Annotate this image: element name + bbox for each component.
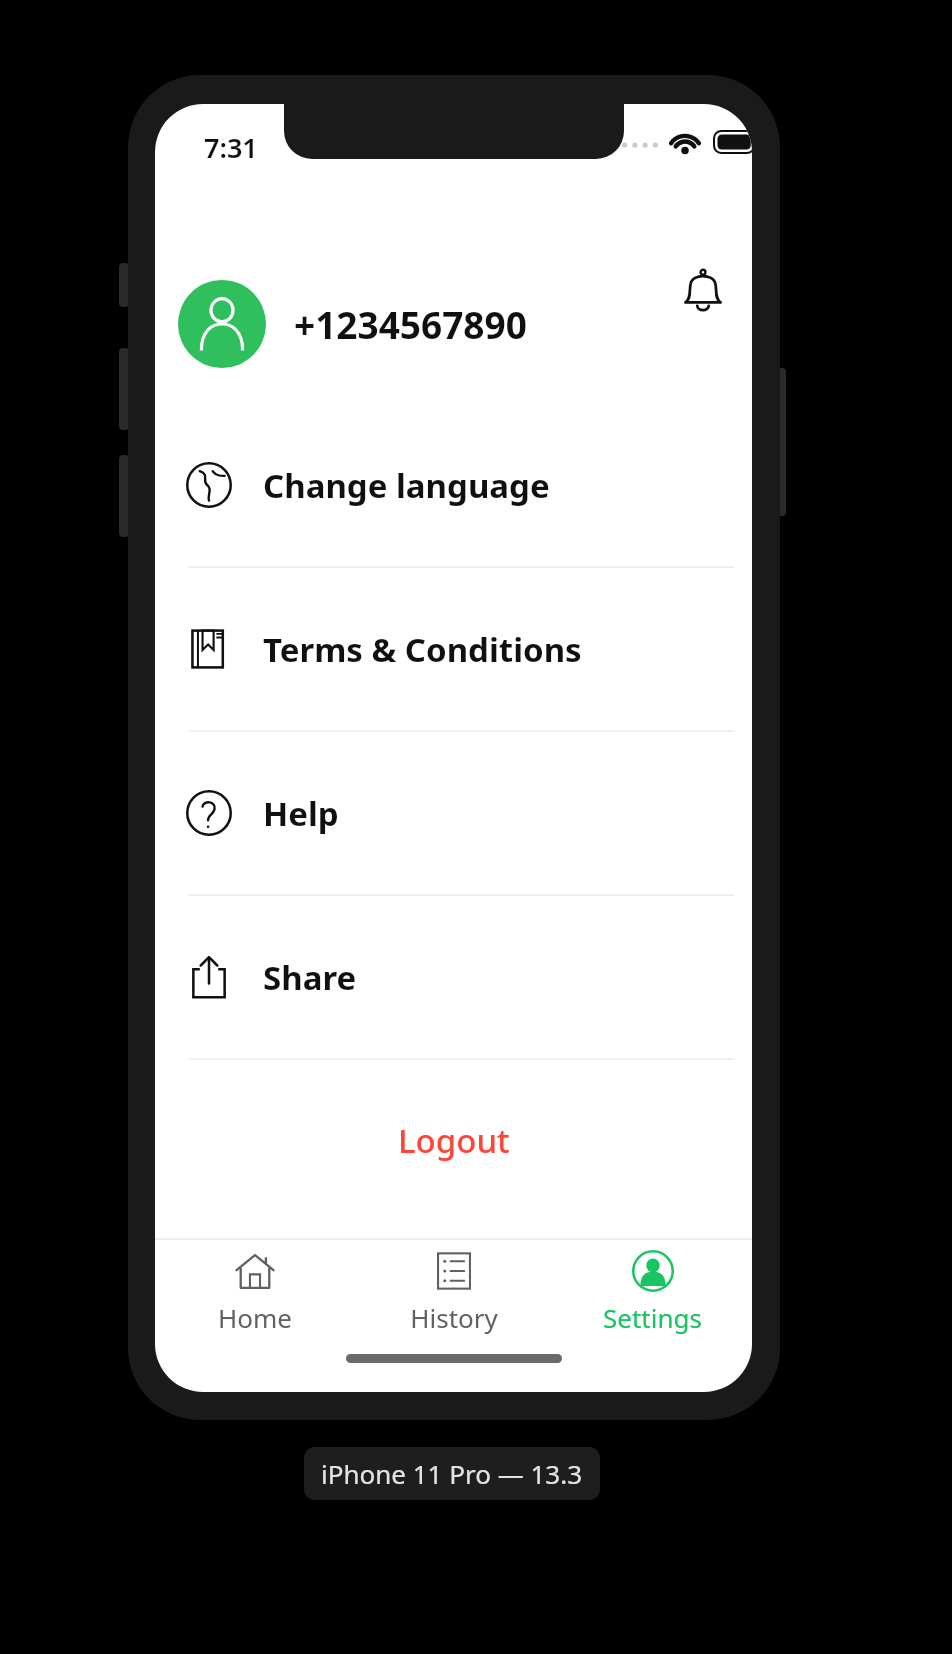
staticText: 7:31 [204,129,258,166]
staticText: Change language [263,463,550,508]
staticText: iPhone 11 Pro — 13.3 [321,1456,583,1491]
button[interactable]: Logout [155,1060,752,1220]
staticText: Home [218,1300,292,1335]
button[interactable]: Share [155,896,752,1058]
staticText: Settings [603,1300,702,1335]
staticText: History [410,1300,498,1335]
button[interactable]: Notifications [667,254,739,326]
button[interactable]: History [354,1240,553,1344]
staticText: Share [263,955,357,1000]
staticText: +1234567890 [294,299,527,349]
button[interactable]: Terms & Conditions [155,568,752,730]
button[interactable]: Settings [553,1240,752,1344]
button[interactable]: Change language [155,404,752,566]
staticText: Terms & Conditions [263,627,582,672]
button[interactable]: +1234567890 [155,244,752,404]
staticText: Help [263,791,339,836]
button[interactable]: Help [155,732,752,894]
staticText: Logout [398,1118,510,1163]
button[interactable]: Home [155,1240,354,1344]
